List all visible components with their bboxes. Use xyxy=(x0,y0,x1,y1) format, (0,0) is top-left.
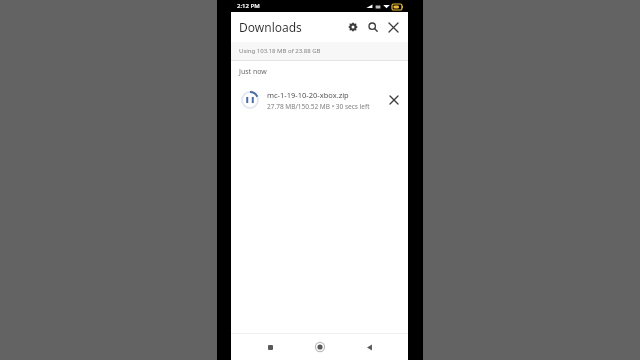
button[interactable]: Cancel download xyxy=(384,90,404,110)
button[interactable]: Back xyxy=(358,336,380,358)
staticText: 2:12 PM xyxy=(237,2,260,10)
staticText: 27.78 MB/150.52 MB • 30 secs left xyxy=(267,102,370,111)
button[interactable]: Settings xyxy=(343,17,363,37)
staticText: Downloads xyxy=(239,19,302,35)
staticText: Just now xyxy=(239,67,267,77)
button[interactable]: Pause download xyxy=(239,89,261,111)
button[interactable]: Recents xyxy=(259,336,281,358)
button[interactable]: Pause download xyxy=(231,83,408,117)
button[interactable]: Home xyxy=(309,336,331,358)
staticText: mc-1-19-10-20-xbox.zip xyxy=(267,90,349,100)
staticText: Using 103.18 MB of 23.88 GB xyxy=(239,47,321,55)
button[interactable]: Close xyxy=(383,17,403,37)
button[interactable]: Search xyxy=(363,17,383,37)
